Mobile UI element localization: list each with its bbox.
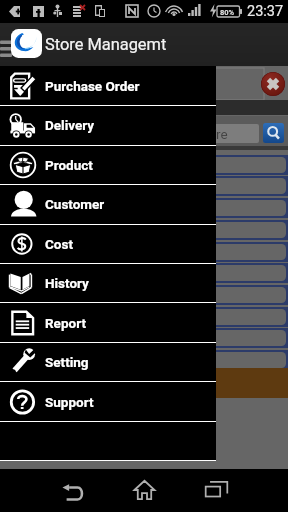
button[interactable]: Back [52, 473, 92, 507]
staticText: Report [45, 315, 86, 331]
button[interactable]: Delivery [0, 105, 216, 144]
button[interactable]: Product [0, 145, 216, 184]
staticText: 80% [220, 8, 235, 17]
button[interactable]: Close [261, 72, 285, 96]
staticText: Support [45, 394, 94, 410]
button[interactable]: Search [263, 123, 284, 143]
staticText: re [216, 126, 228, 142]
button[interactable]: Purchase Order [0, 66, 216, 105]
button[interactable]: Report [0, 303, 216, 342]
staticText: Cost [45, 236, 73, 252]
button[interactable]: Customer [0, 184, 216, 223]
button[interactable]: History [0, 263, 216, 302]
button[interactable]: Support [0, 382, 216, 421]
button[interactable]: Recent apps [196, 473, 236, 507]
button[interactable]: Open navigation drawer [0, 35, 11, 55]
staticText: Purchase Order [45, 78, 140, 94]
staticText: Product [45, 157, 93, 173]
button[interactable]: Home [124, 473, 164, 507]
staticText: Delivery [45, 117, 95, 133]
button[interactable]: Cost [0, 224, 216, 263]
staticText: 23:37 [247, 3, 284, 20]
staticText: Setting [45, 354, 89, 370]
button[interactable]: Setting [0, 342, 216, 381]
staticText: History [45, 275, 89, 291]
staticText: Store Managemt [45, 35, 167, 54]
staticText: Customer [45, 196, 105, 212]
